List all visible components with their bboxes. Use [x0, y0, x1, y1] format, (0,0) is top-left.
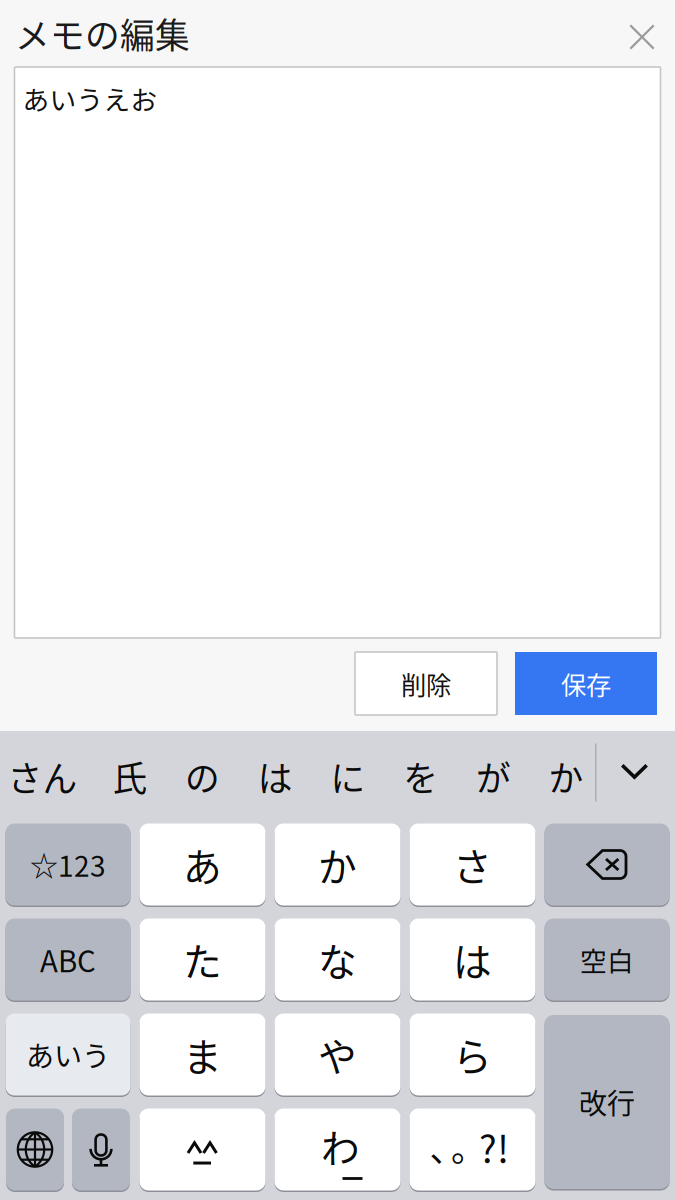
staticText: ま [183, 1026, 222, 1082]
button[interactable]: 句読点 [409, 1107, 535, 1192]
staticText: を [403, 751, 438, 802]
staticText: た [183, 931, 222, 987]
staticText: な [318, 931, 357, 987]
button[interactable]: が [457, 737, 530, 815]
staticText: 改行 [579, 1082, 635, 1122]
button[interactable]: 言語を切り替え [6, 1107, 64, 1192]
staticText: 氏 [112, 751, 147, 802]
button[interactable]: 顔文字 [139, 1107, 265, 1192]
staticText: さ [453, 836, 492, 892]
button[interactable]: 削除 [544, 822, 669, 907]
button[interactable]: を [384, 737, 457, 815]
staticText: 、 [429, 1122, 464, 1172]
button[interactable]: ABC [5, 917, 130, 1002]
button[interactable]: あ [139, 822, 265, 907]
staticText: の [185, 751, 220, 802]
staticText: が [476, 751, 511, 802]
staticText: あ [183, 836, 222, 892]
button[interactable]: 空白 [544, 917, 669, 1002]
staticText: か [549, 751, 584, 802]
staticText: か [318, 836, 357, 892]
staticText: ☆123 [30, 844, 106, 885]
button[interactable]: の [166, 737, 239, 815]
staticText: は [258, 751, 293, 802]
button[interactable]: わ [274, 1107, 400, 1192]
staticText: ABC [40, 938, 96, 981]
button[interactable]: 氏 [94, 737, 166, 815]
button[interactable]: に [312, 737, 384, 815]
button[interactable]: 削除 [355, 652, 497, 715]
staticText: さん [8, 751, 78, 802]
staticText: 削除 [401, 665, 451, 702]
button[interactable]: な [274, 917, 400, 1002]
staticText: ら [453, 1026, 492, 1082]
button[interactable]: や [274, 1012, 400, 1097]
button[interactable]: さん [0, 737, 94, 815]
staticText: ?! [479, 1120, 509, 1174]
staticText: や [318, 1026, 357, 1082]
staticText: わ [321, 1118, 360, 1174]
button[interactable]: あいう [5, 1012, 130, 1097]
button[interactable]: は [409, 917, 535, 1002]
button[interactable]: か [274, 822, 400, 907]
button[interactable]: 音声入力 [72, 1107, 130, 1192]
staticText: メモの編集 [15, 8, 190, 59]
staticText: あいうえお [22, 79, 157, 118]
button[interactable]: ら [409, 1012, 535, 1097]
button[interactable]: 候補を閉じる [602, 732, 666, 820]
button[interactable]: 改行 [544, 1013, 669, 1190]
staticText: に [330, 751, 365, 802]
button[interactable]: た [139, 917, 265, 1002]
button[interactable]: ま [139, 1012, 265, 1097]
staticText: は [453, 931, 492, 987]
staticText: 保存 [561, 665, 611, 702]
staticText: あいう [26, 1034, 110, 1075]
staticText: 。 [451, 1122, 486, 1172]
button[interactable]: 保存 [515, 652, 657, 715]
button[interactable]: ☆123 [5, 822, 130, 907]
button[interactable]: 閉じる [615, 10, 669, 64]
button[interactable]: は [239, 737, 312, 815]
staticText: 空白 [580, 940, 634, 979]
button[interactable]: さ [409, 822, 535, 907]
button[interactable]: か [530, 737, 602, 815]
